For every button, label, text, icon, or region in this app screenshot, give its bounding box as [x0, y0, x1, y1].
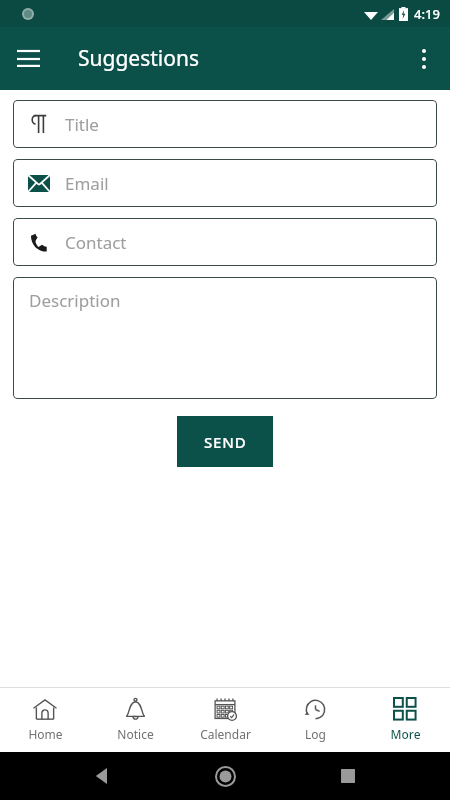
staticText: Suggestions [78, 44, 199, 73]
staticText: Contact [65, 231, 127, 254]
button[interactable]: SEND [177, 416, 273, 467]
button[interactable]: Email [13, 159, 437, 207]
button[interactable]: Title [13, 100, 437, 148]
staticText: Log [305, 726, 326, 742]
button[interactable]: Calendar [180, 688, 270, 752]
staticText: SEND [204, 432, 247, 452]
staticText: 4:19 [414, 5, 440, 23]
button[interactable]: Notice [90, 688, 180, 752]
button[interactable]: Log [270, 688, 360, 752]
button[interactable]: Open navigation menu [0, 31, 56, 87]
button[interactable]: Contact [13, 218, 437, 266]
staticText: Notice [117, 726, 154, 742]
button[interactable]: Home [0, 688, 90, 752]
staticText: Calendar [200, 726, 251, 742]
staticText: Home [28, 726, 63, 742]
staticText: More [390, 726, 421, 742]
staticText: Title [65, 113, 99, 136]
button[interactable]: Description [13, 277, 437, 399]
button[interactable]: More [360, 688, 450, 752]
staticText: Description [29, 289, 121, 312]
button[interactable]: More options [398, 33, 450, 85]
staticText: Email [65, 172, 109, 195]
